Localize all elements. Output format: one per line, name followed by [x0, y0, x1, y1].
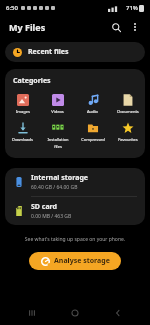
staticText: Images: [16, 109, 30, 114]
staticText: Favourites: [118, 137, 138, 142]
button[interactable]: Installation files: [40, 121, 75, 150]
staticText: Audio: [87, 109, 98, 114]
button[interactable]: More options: [127, 19, 143, 35]
staticText: Downloads: [12, 137, 33, 142]
staticText: 71%: [126, 4, 138, 12]
staticText: Recent files: [28, 47, 69, 57]
staticText: See what's taking up space on your phone…: [0, 236, 150, 243]
staticText: Installation files: [47, 137, 69, 149]
staticText: My Files: [9, 21, 46, 33]
button[interactable]: Images: [5, 93, 40, 115]
staticText: Analyse storage: [54, 256, 110, 266]
staticText: 6:50: [6, 4, 18, 12]
button[interactable]: Internal storage: [5, 168, 145, 196]
button[interactable]: Back: [107, 302, 129, 324]
button[interactable]: Audio: [75, 93, 110, 115]
staticText: Internal storage: [31, 173, 88, 183]
button[interactable]: Recents: [21, 302, 43, 324]
button[interactable]: Favourites: [110, 121, 145, 143]
button[interactable]: SD card: [5, 197, 145, 225]
staticText: Documents: [117, 109, 139, 114]
button[interactable]: Documents: [110, 93, 145, 115]
staticText: Videos: [51, 109, 64, 114]
button[interactable]: Analyse storage: [29, 252, 121, 270]
button[interactable]: Compressed: [75, 121, 110, 143]
staticText: Categories: [13, 76, 51, 86]
staticText: SD card: [31, 202, 58, 212]
button[interactable]: Recent files: [5, 42, 145, 62]
staticText: 0.00 MB / 463 GB: [31, 213, 72, 220]
button[interactable]: Downloads: [5, 121, 40, 143]
button[interactable]: Search: [108, 19, 124, 35]
button[interactable]: Videos: [40, 93, 75, 115]
staticText: Compressed: [81, 137, 105, 142]
staticText: 60.40 GB / 64.00 GB: [31, 184, 78, 191]
button[interactable]: Home: [64, 302, 86, 324]
